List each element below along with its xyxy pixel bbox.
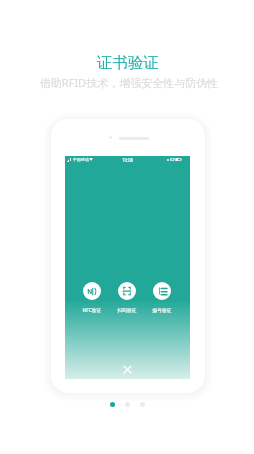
button[interactable]: NFC验证 [75, 282, 109, 314]
button[interactable]: 扫码验证 [110, 282, 144, 313]
staticText: 证书验证 [1, 53, 254, 73]
staticText: NFC验证 [75, 307, 109, 314]
other: Close [124, 366, 131, 373]
staticText: 借助RFID技术，增强安全性与防伪性 [2, 75, 254, 90]
staticText: 中国移动 [73, 157, 89, 162]
staticText: 10:08 [65, 157, 190, 163]
staticText: 编号验证 [145, 307, 179, 313]
button[interactable]: 编号验证 [145, 282, 179, 313]
staticText: 82% [170, 157, 178, 162]
staticText: 扫码验证 [110, 307, 144, 313]
